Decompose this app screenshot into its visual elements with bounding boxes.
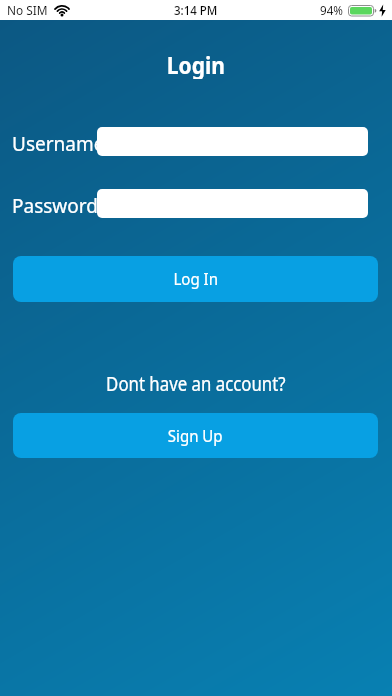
button[interactable]: Log In — [13, 256, 378, 302]
button[interactable] — [97, 189, 368, 218]
staticText: Login — [167, 49, 225, 79]
staticText: Dont have an account? — [106, 370, 286, 397]
staticText: Password — [12, 193, 98, 219]
staticText: Sign Up — [168, 425, 223, 447]
staticText: No SIM — [7, 2, 48, 19]
staticText: 94% — [320, 2, 343, 19]
staticText: 3:14 PM — [174, 2, 218, 19]
staticText: Username — [12, 131, 105, 157]
staticText: Log In — [173, 268, 218, 290]
button[interactable]: Sign Up — [13, 413, 378, 458]
button[interactable] — [97, 127, 368, 156]
